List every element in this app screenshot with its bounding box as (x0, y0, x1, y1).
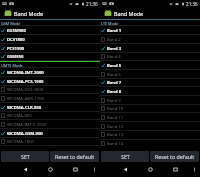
staticText: WCDMA-GSM-900 (7, 131, 43, 137)
staticText: WCDMA-1800 (7, 139, 34, 145)
staticText: LTE Mode (101, 21, 119, 26)
staticText: SET (121, 153, 130, 160)
staticText: GSM850 (7, 54, 24, 60)
staticText: Band 9 (107, 98, 121, 104)
button[interactable]: WCDMA-PCS-1900 (0, 77, 100, 86)
button[interactable]: Band 8 (100, 87, 200, 96)
staticText: WCDMA-PCS-1900 (7, 79, 44, 85)
button[interactable]: WCDMA-800 (0, 111, 100, 120)
button[interactable]: Band 3 (100, 44, 200, 53)
button[interactable]: GSM850 (0, 52, 100, 61)
staticText: UMTS Mode (1, 63, 23, 68)
staticText: 21:36 (186, 1, 198, 7)
staticText: Band 1 (107, 28, 122, 34)
staticText: Reset to default (55, 153, 95, 160)
staticText: SET (21, 153, 30, 160)
button[interactable]: Band 11 (100, 113, 200, 122)
staticText: WCDMA-IMT-2000 (7, 70, 44, 76)
staticText: Band 11 (107, 115, 124, 121)
button[interactable]: WCDMA-IMT-2000 (0, 68, 100, 77)
button[interactable]: WCDMA-IMT-E-2600 (0, 120, 100, 129)
button[interactable]: Reset to default (150, 151, 199, 162)
staticText: WCDMA-AWS-1700 (7, 96, 45, 102)
button[interactable]: WCDMA-1800 (0, 137, 100, 146)
button[interactable]: WCDMA-GSM-900 (0, 129, 100, 138)
button[interactable]: WCDMA-DCS-1800 (0, 85, 100, 94)
staticText: Band 2 (107, 37, 121, 43)
button[interactable]: Band 7 (100, 78, 200, 87)
staticText: WCDMA-800 (7, 113, 32, 119)
button[interactable]: Recents (169, 163, 181, 175)
staticText: DCS1800 (7, 37, 25, 43)
button[interactable]: Band 10 (100, 104, 200, 113)
button[interactable]: PCS1900 (0, 44, 100, 53)
button[interactable]: Band 12 (100, 122, 200, 131)
button[interactable]: Reset to default (50, 151, 99, 162)
button[interactable]: More options (188, 163, 200, 175)
button[interactable]: Band 14 (100, 139, 200, 148)
staticText: Band 3 (107, 46, 122, 52)
staticText: 21:36 (86, 1, 98, 7)
button[interactable]: WCDMA-AWS-1700 (0, 94, 100, 103)
staticText: Band 8 (107, 89, 122, 95)
button[interactable]: SET (101, 151, 149, 162)
staticText: Band 13 (107, 132, 124, 138)
staticText: Band Mode (114, 10, 144, 17)
button[interactable]: Home (144, 163, 156, 175)
button[interactable]: Back (119, 163, 131, 175)
staticText: GSM Mode (1, 21, 21, 26)
button[interactable]: Recents (69, 163, 81, 175)
staticText: Band 12 (107, 124, 124, 130)
staticText: WCDMA-CLR-850 (7, 105, 42, 111)
button[interactable]: Band 6 (100, 70, 200, 79)
button[interactable]: Band 2 (100, 35, 200, 44)
button[interactable]: Band 4 (100, 52, 200, 61)
button[interactable]: Band 13 (100, 130, 200, 139)
button[interactable]: EGSM900 (0, 26, 100, 35)
staticText: PCS1900 (7, 46, 25, 52)
staticText: Band 7 (107, 80, 122, 86)
button[interactable]: Back (19, 163, 31, 175)
button[interactable]: WCDMA-CLR-850 (0, 103, 100, 112)
staticText: Band 10 (107, 106, 124, 112)
staticText: EGSM900 (7, 28, 26, 34)
button[interactable]: Band 1 (100, 26, 200, 35)
staticText: WCDMA-IMT-E-2600 (7, 122, 47, 128)
staticText: Reset to default (155, 153, 195, 160)
button[interactable]: Band 5 (100, 61, 200, 70)
button[interactable]: More options (88, 163, 100, 175)
button[interactable]: Band 9 (100, 96, 200, 105)
button[interactable]: SET (1, 151, 49, 162)
staticText: Band 4 (107, 54, 121, 60)
staticText: Band 14 (107, 141, 124, 147)
staticText: WCDMA-DCS-1800 (7, 87, 44, 93)
button[interactable]: Home (44, 163, 56, 175)
button[interactable]: DCS1800 (0, 35, 100, 44)
staticText: Band 5 (107, 63, 122, 69)
staticText: Band 6 (107, 72, 121, 78)
staticText: Band Mode (14, 10, 44, 17)
